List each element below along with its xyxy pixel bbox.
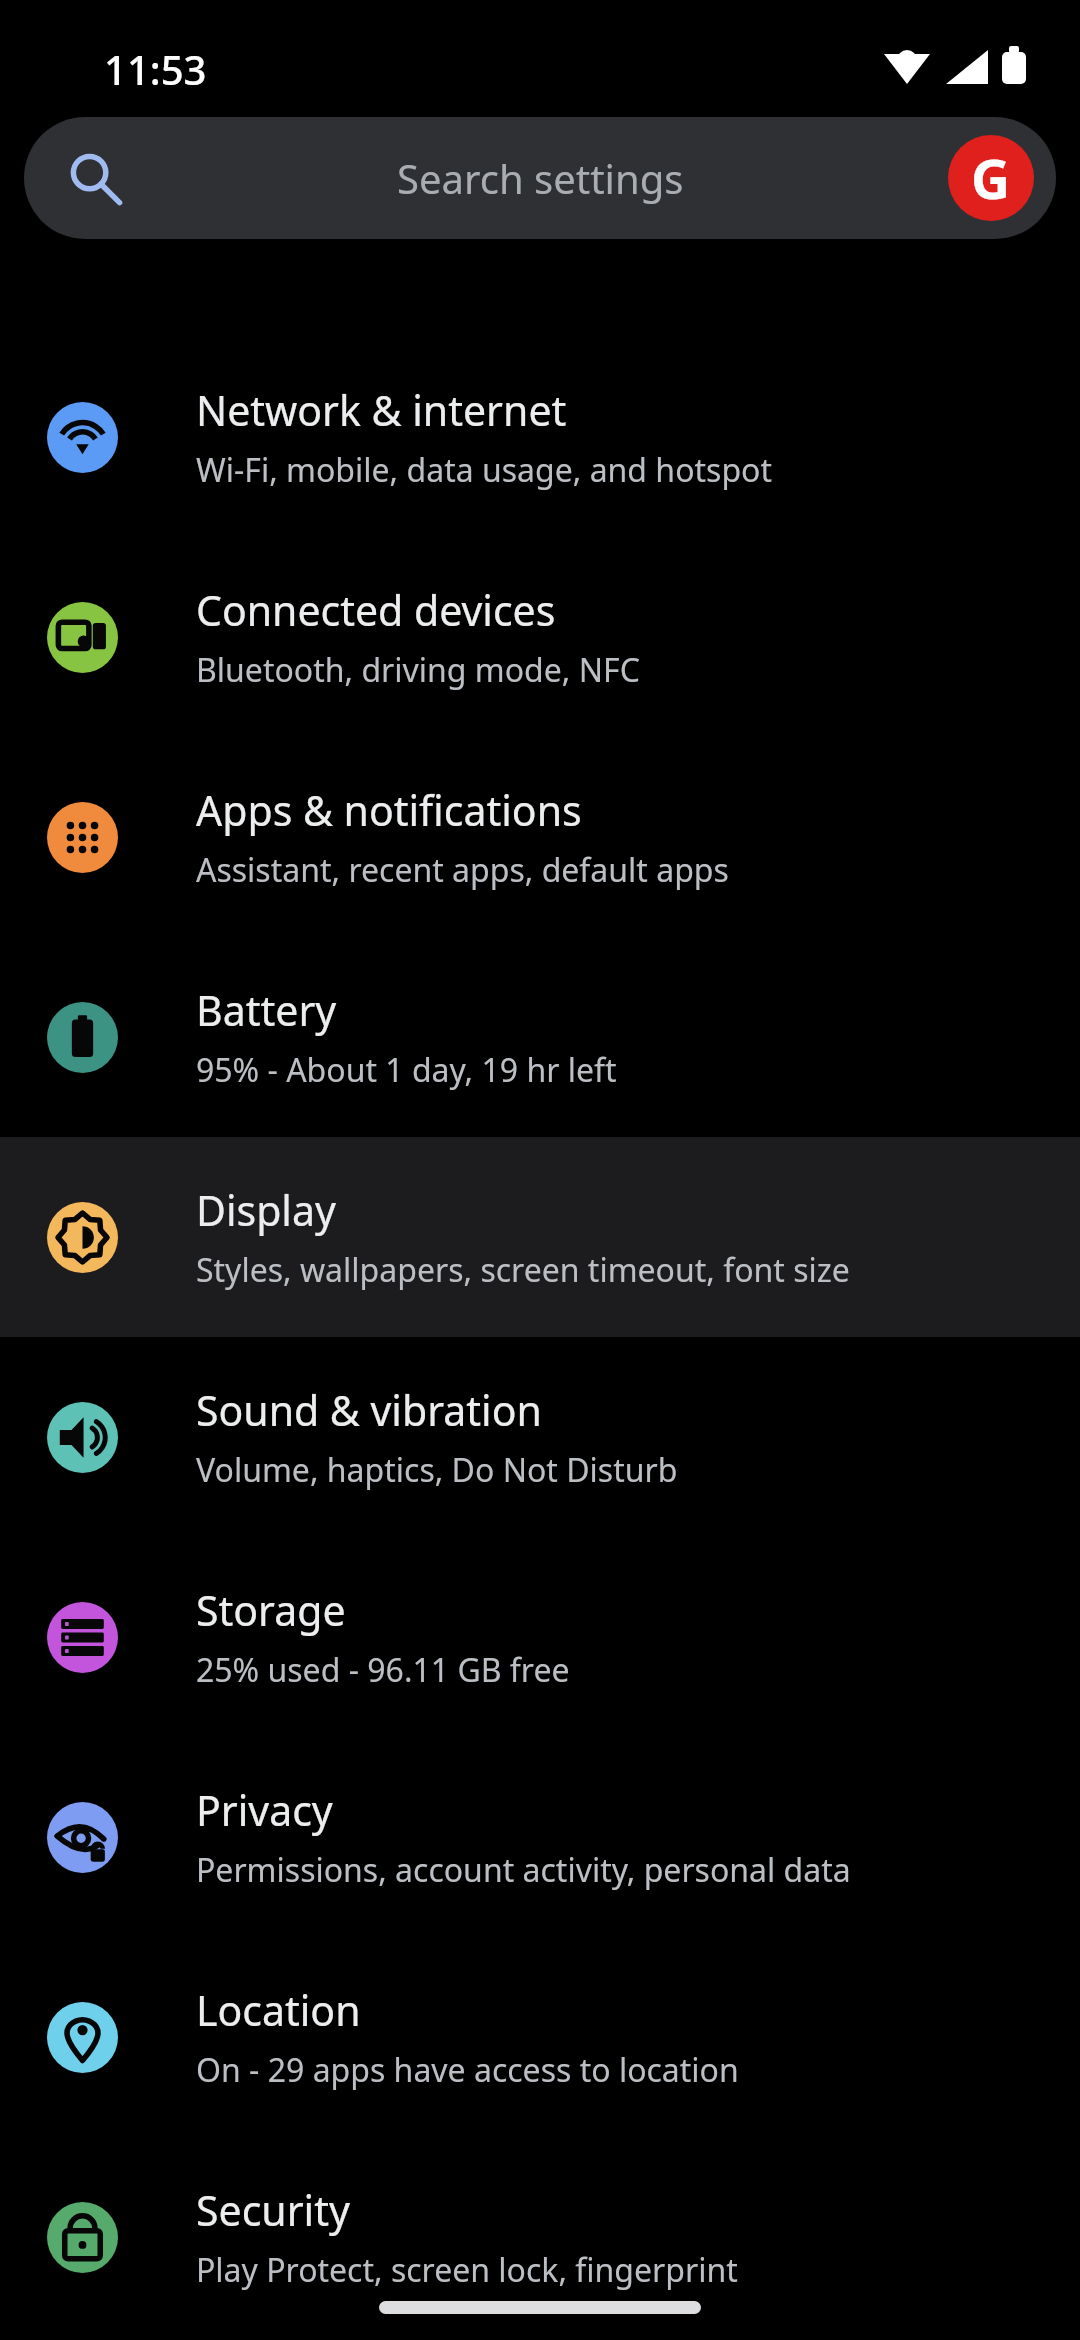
staticText: 25% used - 96.11 GB free [196,1648,570,1692]
staticText: Bluetooth, driving mode, NFC [196,648,640,692]
button[interactable]: Search [24,117,1056,239]
staticText: Security [196,2182,350,2238]
staticText: Battery [196,982,337,1038]
button[interactable]: Storage [0,1537,1080,1737]
button[interactable]: Security [0,2137,1080,2337]
button[interactable]: Sound & vibration [0,1337,1080,1537]
staticText: 95% - About 1 day, 19 hr left [196,1048,617,1092]
staticText: Apps & notifications [196,782,582,838]
button[interactable]: Apps & notifications [0,737,1080,937]
other: Search [68,151,122,205]
staticText: On - 29 apps have access to location [196,2048,739,2092]
button[interactable]: Connected devices [0,537,1080,737]
staticText: Search settings [397,151,684,205]
staticText: Storage [196,1582,346,1638]
staticText: Sound & vibration [196,1382,542,1438]
staticText: Connected devices [196,582,556,638]
staticText: G [971,141,1011,215]
staticText: Wi-Fi, mobile, data usage, and hotspot [196,448,772,492]
staticText: Network & internet [196,382,567,438]
button[interactable]: Battery [0,937,1080,1137]
staticText: Volume, haptics, Do Not Disturb [196,1448,678,1492]
staticText: Privacy [196,1782,333,1838]
button[interactable]: Google account [948,135,1034,221]
staticText: Play Protect, screen lock, fingerprint [196,2248,738,2292]
staticText: Assistant, recent apps, default apps [196,848,729,892]
staticText: Styles, wallpapers, screen timeout, font… [196,1248,850,1292]
staticText: Permissions, account activity, personal … [196,1848,851,1892]
button[interactable]: Network & internet [0,337,1080,537]
button[interactable]: Display [0,1137,1080,1337]
staticText: Location [196,1982,361,2038]
button[interactable]: Privacy [0,1737,1080,1937]
button[interactable]: Location [0,1937,1080,2137]
staticText: Display [196,1182,336,1238]
staticText: 11:53 [104,42,207,96]
